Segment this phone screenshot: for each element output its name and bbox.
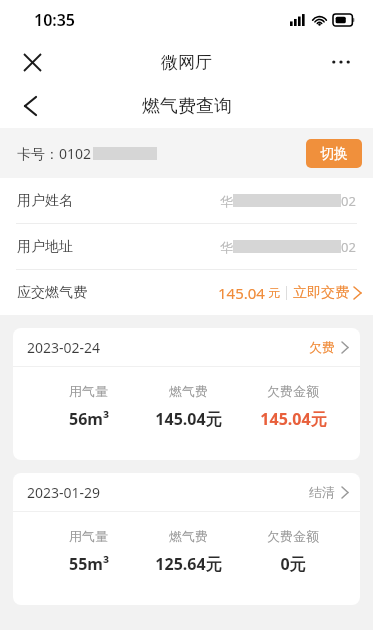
staticText: 燃气费 <box>169 383 208 399</box>
staticText: 145.04元 <box>260 408 327 430</box>
staticText: 欠费金额 <box>267 383 319 399</box>
staticText: 元 <box>268 285 280 300</box>
button[interactable]: 用户姓名 <box>0 178 373 223</box>
button[interactable]: More options <box>319 40 363 84</box>
staticText: 卡号：0102 <box>17 144 92 163</box>
staticText: 微网厅 <box>161 52 212 73</box>
staticText: 用气量 <box>69 383 108 399</box>
staticText: 145.04元 <box>155 408 222 430</box>
staticText: 2023-01-29 <box>27 483 101 502</box>
staticText: 结清 <box>309 484 335 500</box>
staticText: 切换 <box>320 145 348 163</box>
staticText: 欠费金额 <box>267 528 319 544</box>
button[interactable]: Back <box>8 84 52 128</box>
staticText: 55m³ <box>69 553 109 575</box>
staticText: 145.04 <box>218 283 265 303</box>
button[interactable]: 用户地址 <box>0 224 373 269</box>
button[interactable]: 2023-02-24 <box>13 328 360 460</box>
button[interactable]: Close <box>10 40 54 84</box>
staticText: 欠费 <box>309 339 335 355</box>
staticText: 56m³ <box>69 408 109 430</box>
staticText: 立即交费 <box>293 284 349 302</box>
button[interactable]: 切换 <box>306 139 362 168</box>
staticText: 2023-02-24 <box>27 338 101 357</box>
staticText: 125.64元 <box>155 553 222 575</box>
staticText: 华 <box>220 193 233 209</box>
staticText: 应交燃气费 <box>17 284 87 302</box>
staticText: 燃气费查询 <box>142 95 232 118</box>
staticText: 用气量 <box>69 528 108 544</box>
staticText: 用户地址 <box>17 238 73 256</box>
staticText: 02 <box>341 192 356 210</box>
staticText: 02 <box>341 238 356 256</box>
staticText: 华 <box>220 239 233 255</box>
staticText: 10:35 <box>34 9 76 31</box>
staticText: 用户姓名 <box>17 192 73 210</box>
staticText: 0元 <box>280 553 306 575</box>
button[interactable]: 应交燃气费 <box>0 270 373 315</box>
staticText: 燃气费 <box>169 528 208 544</box>
button[interactable]: 2023-01-29 <box>13 473 360 605</box>
